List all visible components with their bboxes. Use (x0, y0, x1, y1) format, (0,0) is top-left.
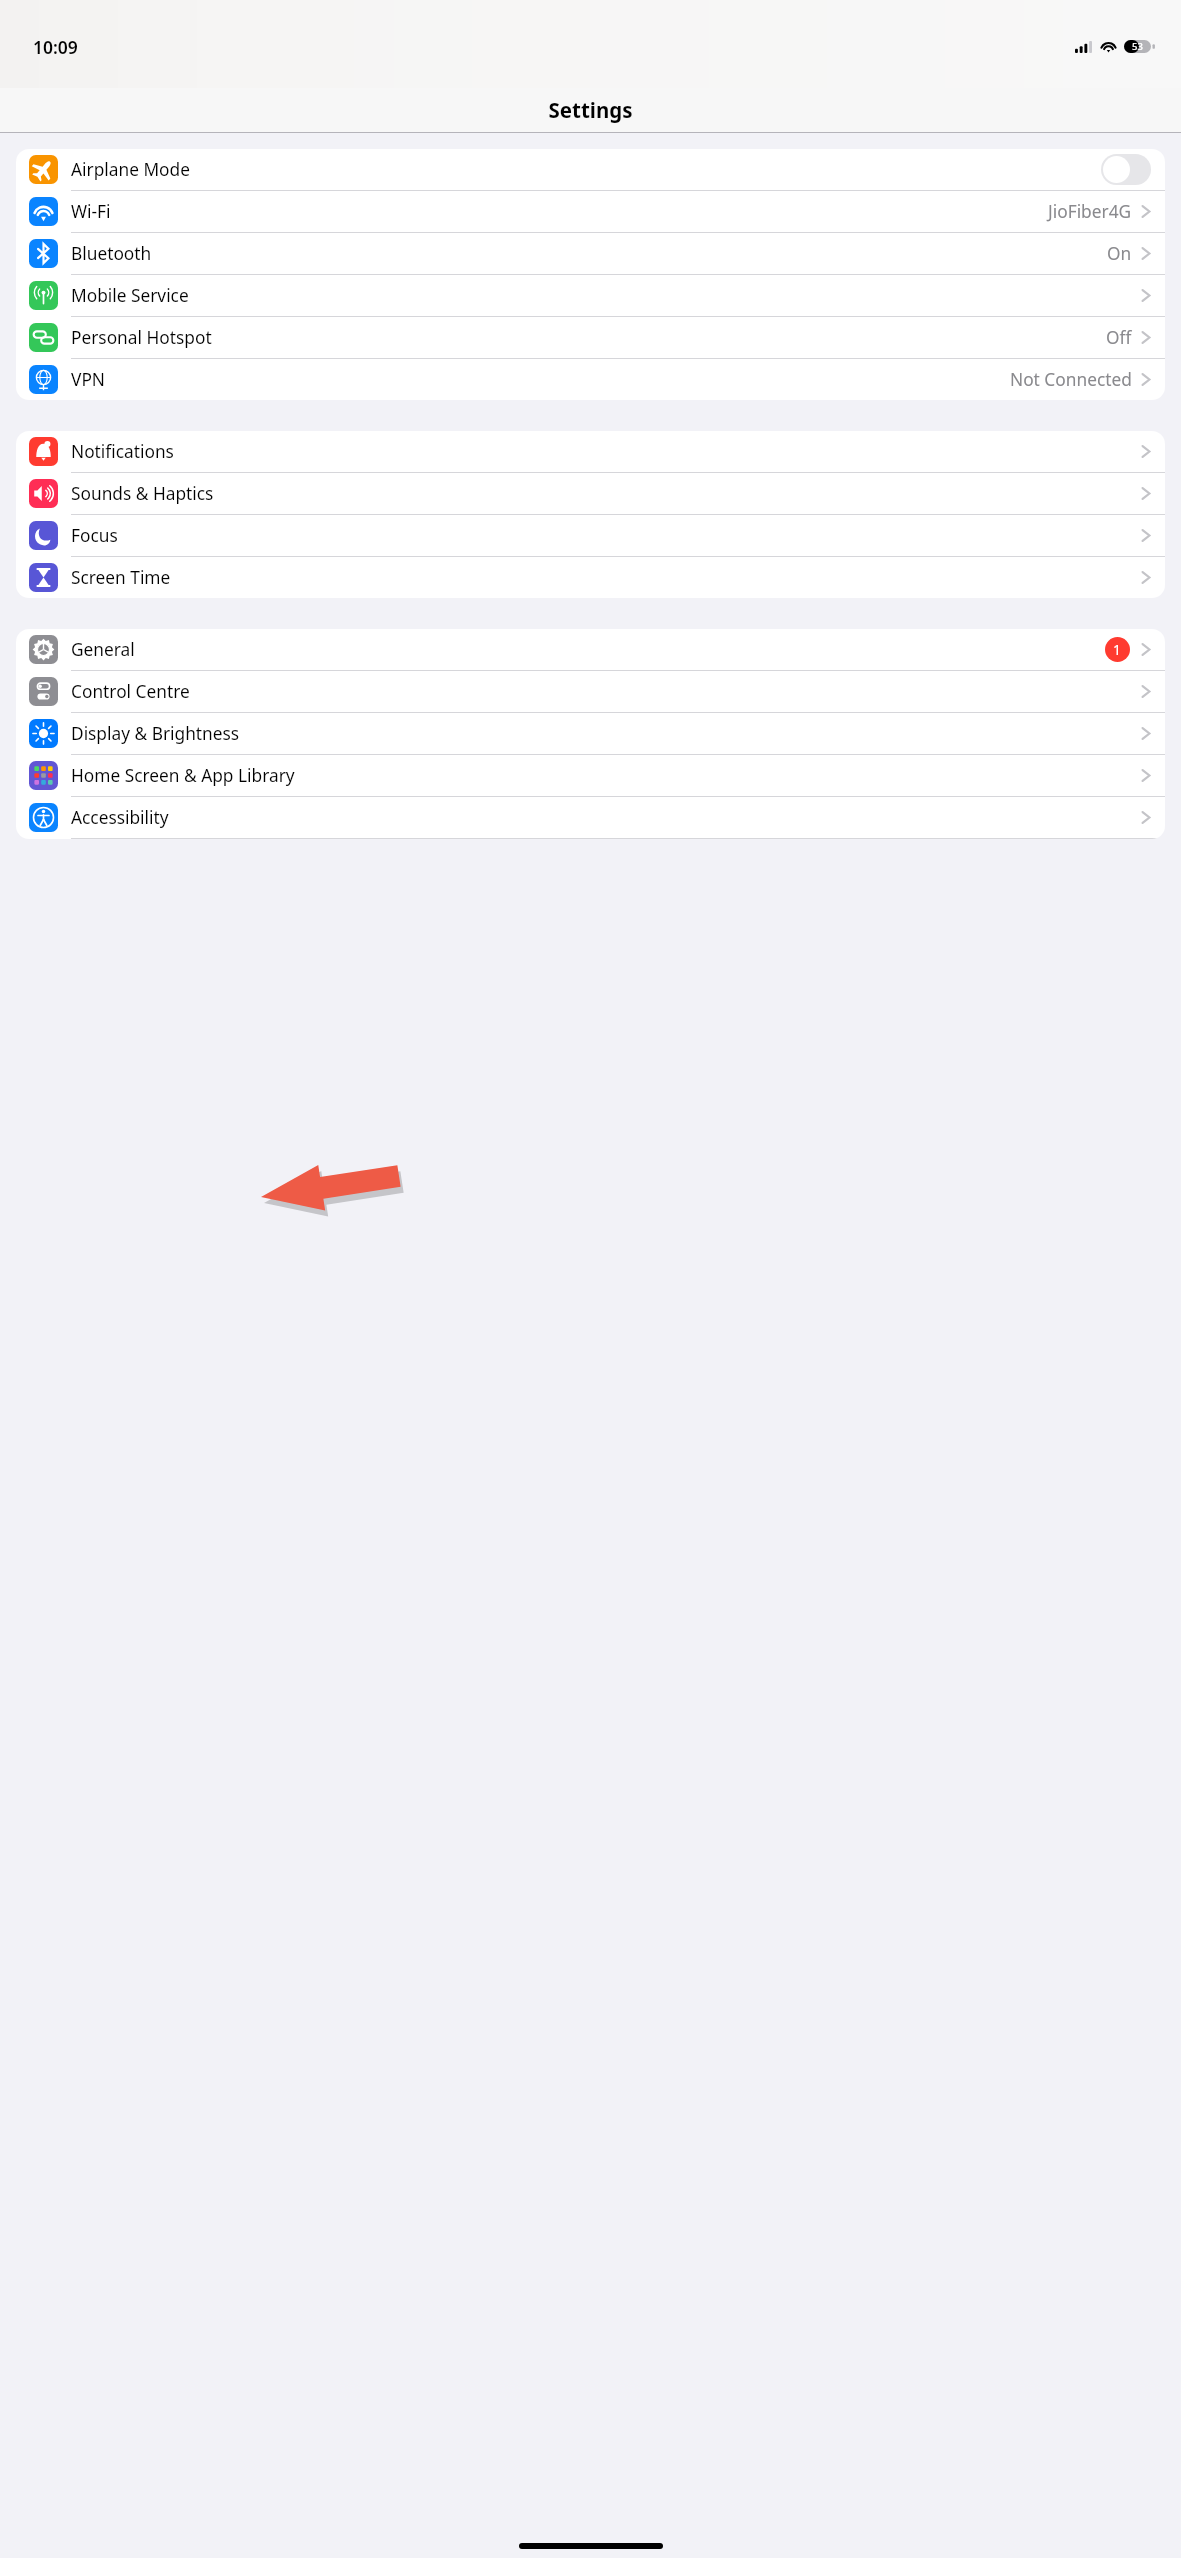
button[interactable]: General (16, 629, 1165, 671)
staticText: Display & Brightness (71, 722, 1141, 746)
staticText: Settings (548, 96, 633, 124)
staticText: 1 (1113, 640, 1122, 659)
staticText: Mobile Service (71, 284, 1141, 308)
staticText: JioFiber4G (1048, 200, 1132, 224)
button[interactable]: Home Screen & App Library (16, 755, 1165, 797)
button[interactable]: Sounds & Haptics (16, 473, 1165, 515)
staticText: Wi-Fi (71, 200, 1048, 224)
button[interactable]: Wi-Fi (16, 191, 1165, 233)
button[interactable]: Screen Time (16, 557, 1165, 598)
staticText: General (71, 638, 1105, 662)
staticText: Not Connected (1010, 368, 1132, 392)
staticText: VPN (71, 368, 1010, 392)
staticText: Sounds & Haptics (71, 482, 1141, 506)
staticText: Accessibility (71, 806, 1141, 830)
staticText: Notifications (71, 440, 1141, 464)
staticText: Control Centre (71, 680, 1141, 704)
button[interactable]: Bluetooth (16, 233, 1165, 275)
staticText: 10:09 (33, 35, 78, 59)
button[interactable]: Display & Brightness (16, 713, 1165, 755)
button[interactable]: Control Centre (16, 671, 1165, 713)
button[interactable]: Accessibility (16, 797, 1165, 839)
button[interactable]: Notifications (16, 431, 1165, 473)
button[interactable]: Mobile Service (16, 275, 1165, 317)
staticText: Screen Time (71, 566, 1141, 590)
staticText: Off (1106, 326, 1132, 350)
staticText: Home Screen & App Library (71, 764, 1141, 788)
button[interactable]: Focus (16, 515, 1165, 557)
staticText: Bluetooth (71, 242, 1107, 266)
button[interactable]: Personal Hotspot (16, 317, 1165, 359)
staticText: Airplane Mode (71, 158, 1101, 182)
button[interactable]: Airplane Mode (16, 149, 1165, 191)
staticText: Personal Hotspot (71, 326, 1106, 350)
button[interactable]: VPN (16, 359, 1165, 400)
staticText: Focus (71, 524, 1141, 548)
staticText: On (1107, 242, 1132, 266)
staticText: 53 (1132, 40, 1143, 53)
button[interactable]: Airplane Mode toggle (1101, 154, 1151, 185)
